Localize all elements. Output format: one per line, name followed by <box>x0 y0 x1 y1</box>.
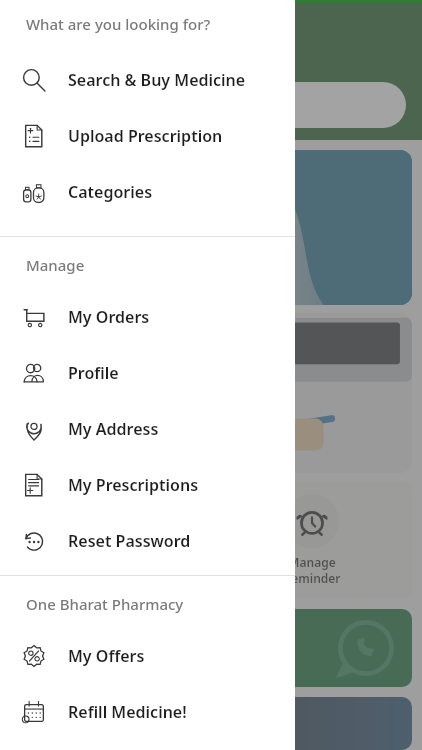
staticText: My Offers <box>68 645 145 667</box>
staticText: My Prescriptions <box>68 474 199 496</box>
button[interactable]: Order on WhatsApp <box>10 609 412 687</box>
button[interactable]: My Orders <box>0 289 295 345</box>
staticText: Profile <box>68 362 119 384</box>
staticText: Reset Password <box>68 530 191 552</box>
button[interactable] <box>10 313 412 473</box>
staticText: What are you looking for? <box>26 14 211 34</box>
button[interactable] <box>10 150 412 305</box>
button[interactable]: Refill Medicine! <box>0 684 295 740</box>
button[interactable]: My Address <box>0 401 295 457</box>
staticText: Order on WhatsApp <box>26 638 171 658</box>
button[interactable]: Search & Buy Medicine <box>0 52 295 108</box>
button[interactable]: Reset Password <box>0 513 295 569</box>
button[interactable]: My Prescriptions <box>0 457 295 513</box>
staticText: Manage <box>26 255 85 275</box>
staticText: One Bharat Pharmacy <box>26 594 184 614</box>
staticText: Upload Prescription <box>68 125 223 147</box>
staticText: Search & Buy Medicine <box>68 69 246 91</box>
button[interactable]: Search medicine and otc ... <box>16 82 406 128</box>
staticText: My Orders <box>68 306 150 328</box>
button[interactable]: Profile <box>0 345 295 401</box>
staticText: Refill Medicine! <box>68 701 187 723</box>
staticText: Manage Reminder <box>283 554 341 586</box>
staticText: My Address <box>68 418 159 440</box>
staticText: Categories <box>68 181 153 203</box>
button[interactable]: Manage Reminder <box>211 481 412 599</box>
button[interactable]: Categories <box>0 164 295 220</box>
button[interactable]: My Offers <box>0 628 295 684</box>
button[interactable]: Upload Prescription <box>0 108 295 164</box>
